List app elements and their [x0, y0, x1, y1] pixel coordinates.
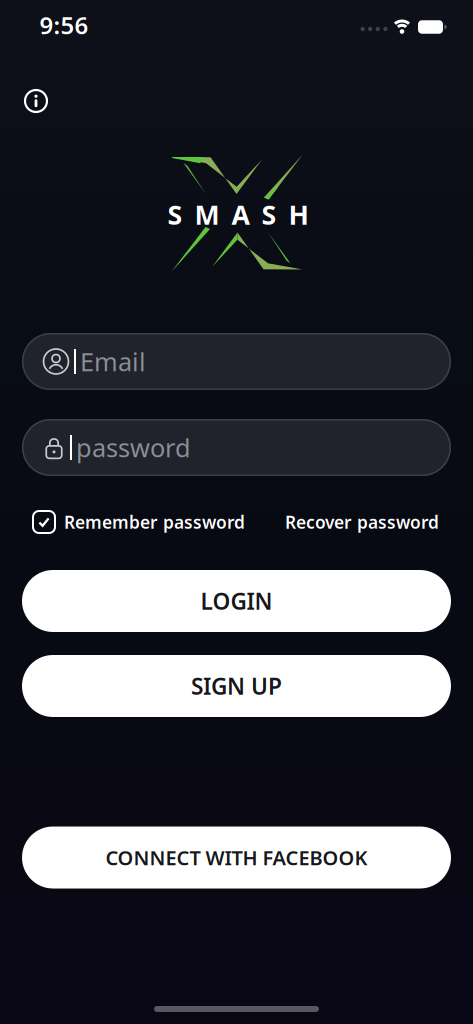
staticText: Remember password	[64, 510, 245, 533]
button[interactable]: password	[22, 419, 451, 476]
staticText: Email	[80, 345, 146, 378]
staticText: M	[194, 197, 219, 232]
button[interactable]: CONNECT WITH FACEBOOK	[22, 826, 451, 888]
staticText: S	[167, 197, 182, 232]
staticText: S	[261, 197, 276, 232]
staticText: password	[76, 431, 191, 464]
staticText: 9:56	[39, 9, 88, 41]
staticText: SIGN UP	[191, 671, 282, 701]
button[interactable]: SIGN UP	[22, 655, 451, 717]
staticText: CONNECT WITH FACEBOOK	[105, 844, 367, 871]
button[interactable]: Recover password	[285, 510, 439, 533]
staticText: Recover password	[285, 510, 439, 533]
button[interactable]: Info	[23, 88, 49, 114]
staticText: H	[288, 197, 308, 232]
staticText: A	[231, 197, 249, 232]
button[interactable]: LOGIN	[22, 570, 451, 632]
button[interactable]: Email	[22, 333, 451, 390]
button[interactable]: Remember password	[33, 510, 245, 533]
staticText: LOGIN	[200, 586, 272, 616]
